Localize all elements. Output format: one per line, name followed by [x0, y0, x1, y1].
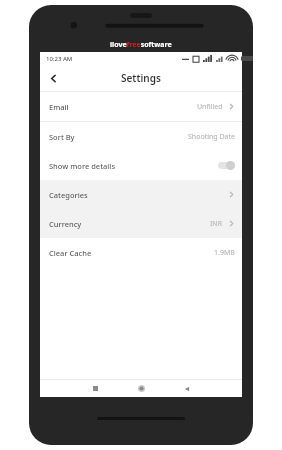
button[interactable]: Recent apps — [72, 380, 118, 397]
staticText: 10:23 AM — [46, 55, 73, 63]
staticText: Shooting Date — [188, 132, 235, 142]
button[interactable]: Back — [40, 65, 66, 91]
staticText: Unfilled — [197, 102, 223, 112]
staticText: ilovefreesoftware — [110, 40, 172, 50]
button[interactable]: Email — [40, 92, 242, 121]
button[interactable]: Home — [118, 380, 164, 397]
staticText: INR — [210, 219, 223, 229]
button[interactable]: Currency — [40, 209, 242, 238]
button[interactable]: Clear Cache — [40, 238, 242, 267]
staticText: Email — [49, 102, 69, 112]
staticText: 1.9MB — [214, 248, 235, 258]
staticText: Currency — [49, 219, 82, 229]
staticText: Sort By — [49, 132, 75, 142]
button[interactable]: Back — [164, 380, 210, 397]
staticText: Show more details — [49, 161, 116, 171]
button[interactable]: Show more details — [40, 151, 242, 180]
staticText: Categories — [49, 190, 88, 200]
staticText: Settings — [121, 71, 161, 85]
button[interactable]: Categories — [40, 180, 242, 209]
staticText: Clear Cache — [49, 248, 92, 258]
button[interactable]: Sort By — [40, 122, 242, 151]
